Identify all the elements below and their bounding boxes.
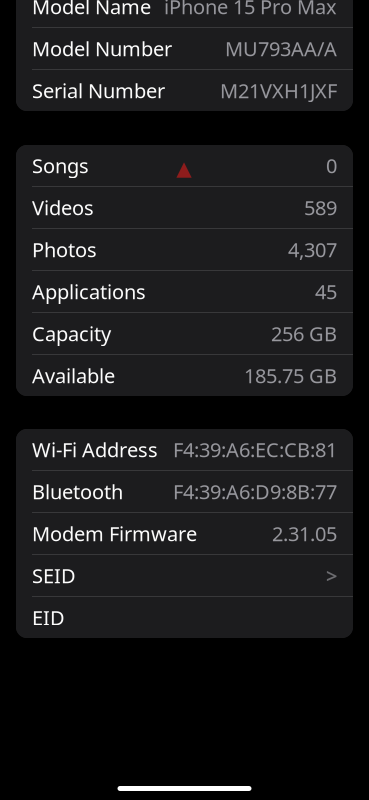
staticText: ▲	[176, 157, 191, 180]
staticText: Model Number	[32, 35, 172, 62]
staticText: F4:39:A6:EC:CB:81	[173, 436, 337, 463]
button[interactable]: Bluetooth	[16, 471, 353, 512]
staticText: MU793AA/A	[225, 35, 337, 62]
staticText: M21VXH1JXF	[220, 77, 337, 104]
staticText: 256 GB	[271, 320, 337, 347]
staticText: 0	[326, 152, 337, 179]
button[interactable]: Model Name	[16, 0, 353, 27]
staticText: F4:39:A6:D9:8B:77	[173, 478, 337, 505]
staticText: 4,307	[288, 236, 337, 263]
button[interactable]: Modem Firmware	[16, 513, 353, 554]
button[interactable]: SEID	[16, 555, 353, 596]
staticText: Serial Number	[32, 77, 165, 104]
button[interactable]: Capacity	[16, 313, 353, 354]
staticText: >	[326, 562, 337, 589]
staticText: Wi-Fi Address	[32, 436, 158, 463]
staticText: Modem Firmware	[32, 520, 197, 547]
button[interactable]: Applications	[16, 271, 353, 312]
button[interactable]: Available	[16, 355, 353, 396]
staticText: Videos	[32, 194, 94, 221]
button[interactable]: Serial Number	[16, 70, 353, 111]
staticText: 2.31.05	[272, 520, 337, 547]
staticText: 45	[315, 278, 337, 305]
button[interactable]: Photos	[16, 229, 353, 270]
staticText: 589	[304, 194, 337, 221]
staticText: iPhone 15 Pro Max	[164, 0, 337, 20]
staticText: SEID	[32, 562, 76, 589]
staticText: Capacity	[32, 320, 111, 347]
button[interactable]: Songs	[16, 145, 353, 186]
staticText: 185.75 GB	[244, 362, 337, 389]
button[interactable]: Videos	[16, 187, 353, 228]
staticText: Applications	[32, 278, 146, 305]
staticText: Available	[32, 362, 115, 389]
button[interactable]: EID	[16, 597, 353, 638]
staticText: Bluetooth	[32, 478, 123, 505]
staticText: Songs	[32, 152, 89, 179]
button[interactable]: Wi-Fi Address	[16, 429, 353, 470]
staticText: EID	[32, 604, 65, 631]
button[interactable]: Model Number	[16, 28, 353, 69]
staticText: Model Name	[32, 0, 151, 20]
staticText: Photos	[32, 236, 97, 263]
